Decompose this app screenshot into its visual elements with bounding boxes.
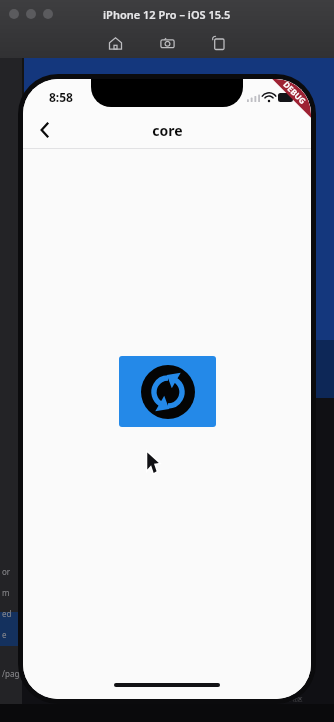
staticText: iPhone 12 Pro – iOS 15.5 bbox=[103, 7, 231, 22]
button[interactable]: Sync bbox=[119, 356, 216, 427]
staticText: ed bbox=[2, 608, 12, 619]
staticText: DEBUG bbox=[281, 79, 309, 106]
staticText: e bbox=[2, 629, 7, 640]
staticText: core bbox=[152, 121, 183, 140]
button[interactable]: Close bbox=[9, 9, 19, 19]
button[interactable]: Rotate bbox=[207, 31, 231, 55]
staticText: or bbox=[2, 566, 11, 577]
button[interactable]: Home bbox=[103, 31, 127, 55]
staticText: @移工程金技术社区 bbox=[258, 696, 303, 703]
button[interactable]: Zoom bbox=[43, 9, 53, 19]
button[interactable]: Back bbox=[23, 111, 67, 149]
staticText: /pag bbox=[2, 668, 20, 679]
button[interactable]: Screenshot bbox=[155, 31, 179, 55]
staticText: m bbox=[2, 587, 10, 598]
button[interactable]: Minimise bbox=[26, 9, 36, 19]
staticText: 8:58 bbox=[49, 89, 73, 105]
